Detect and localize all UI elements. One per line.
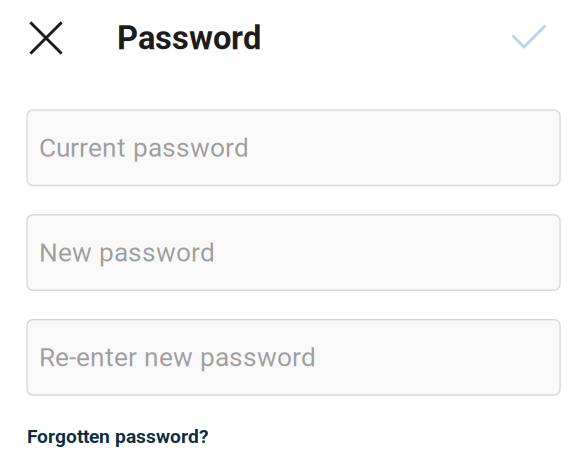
staticText: Forgotten password? xyxy=(27,425,209,448)
button[interactable]: Forgotten password? xyxy=(27,425,209,448)
staticText: Current password xyxy=(39,132,249,163)
button[interactable]: Save password xyxy=(491,2,573,74)
staticText: Re-enter new password xyxy=(39,342,316,373)
button[interactable]: Re-enter new password xyxy=(27,320,560,395)
staticText: New password xyxy=(39,237,215,268)
button[interactable]: Current password xyxy=(27,110,560,185)
staticText: Password xyxy=(117,19,261,57)
button[interactable]: Close xyxy=(0,2,82,74)
button[interactable]: New password xyxy=(27,215,560,290)
